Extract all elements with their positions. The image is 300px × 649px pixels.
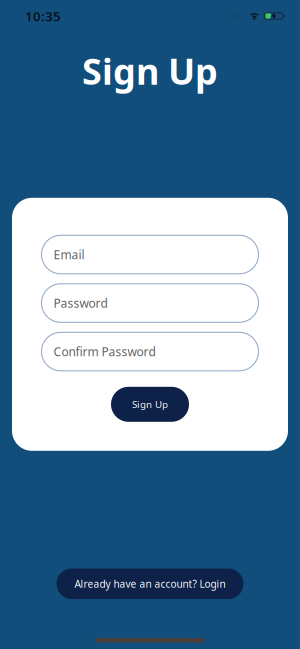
button[interactable]: Email [41,235,259,274]
button[interactable]: Already have an account? Login [56,568,243,599]
staticText: Email [53,247,84,262]
staticText: Sign Up [132,398,168,411]
button[interactable]: Sign Up [111,387,189,422]
staticText: Confirm Password [53,344,155,359]
staticText: 10:35 [25,7,61,25]
button[interactable]: Confirm Password [41,332,259,371]
button[interactable]: Password [41,283,259,323]
staticText: Sign Up [82,47,218,95]
staticText: Already have an account? Login [74,577,225,591]
staticText: Password [53,295,107,311]
